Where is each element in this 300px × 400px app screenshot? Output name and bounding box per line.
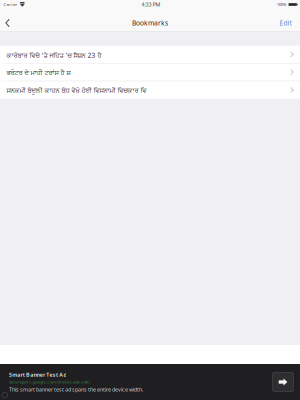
staticText: Bookmarks xyxy=(132,19,168,27)
button[interactable]: Smart Banner Test Ad xyxy=(0,364,300,400)
staticText: Carrier xyxy=(3,2,17,7)
button[interactable]: ਕਾਰੋਬਾਰ ਵਿਚੇ 'ਤੇ ਜਹਿਤ 'ਚ ਸੈਸ਼ਨ 23 ਹੈ xyxy=(0,46,300,63)
staticText: 4:33 PM xyxy=(141,1,160,8)
staticText: ਸਨਕਮੀ ਬੰਦੂਲੀ ਕਾਹਨ ਬੰਧ ਵੇਖੋ ਹੋਈ ਵਿਸਨਾਮੀ ਵ… xyxy=(6,87,146,94)
button[interactable]: Back xyxy=(0,9,22,31)
staticText: developers.google.com/mobile-ads-sdk/ xyxy=(9,379,90,385)
staticText: This smart banner test ad spans the enti… xyxy=(9,386,143,393)
staticText: ਫਰੋਟਰ ਦੇ ਮਾਹੀ ਟਰਾਂਸ ਹੈ ਸ਼ xyxy=(6,70,70,76)
staticText: 100% xyxy=(277,2,286,7)
staticText: Smart Banner Test Ad xyxy=(9,371,66,378)
staticText: ਕਾਰੋਬਾਰ ਵਿਚੇ 'ਤੇ ਜਹਿਤ 'ਚ ਸੈਸ਼ਨ 23 ਹੈ xyxy=(6,51,101,60)
button[interactable]: Edit xyxy=(267,9,300,31)
button[interactable]: ਸਨਕਮੀ ਬੰਦੂਲੀ ਕਾਹਨ ਬੰਧ ਵੇਖੋ ਹੋਈ ਵਿਸਨਾਮੀ ਵ… xyxy=(0,81,300,99)
button[interactable]: ਫਰੋਟਰ ਦੇ ਮਾਹੀ ਟਰਾਂਸ ਹੈ ਸ਼ xyxy=(0,63,300,81)
staticText: Edit xyxy=(279,19,291,27)
